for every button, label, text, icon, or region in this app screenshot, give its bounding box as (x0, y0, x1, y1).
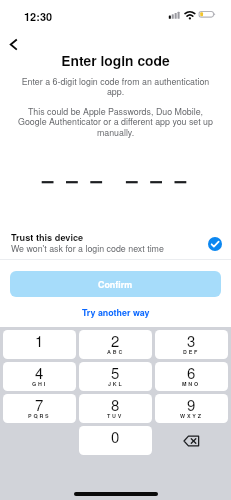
staticText: 12:30 (24, 9, 53, 25)
staticText: 2 (111, 330, 120, 351)
button[interactable]: 4 (3, 362, 76, 391)
button[interactable]: 9 (155, 394, 228, 423)
staticText: 8 (111, 394, 120, 415)
staticText: We won't ask for a login code next time (11, 242, 164, 255)
staticText: 5 (111, 362, 120, 383)
button[interactable]: 5 (79, 362, 152, 391)
staticText: DEF (183, 348, 200, 356)
button[interactable]: 1 (3, 330, 76, 359)
button[interactable]: 0 (79, 426, 152, 455)
staticText: 0 (111, 426, 120, 447)
button[interactable]: 7 (3, 394, 76, 423)
staticText: JKL (108, 380, 124, 388)
staticText: 6 (187, 362, 196, 383)
button[interactable]: Trust this device (0, 222, 231, 259)
staticText: Enter a 6-digit login code from an authe… (17, 75, 214, 98)
button[interactable]: Confirm (10, 271, 221, 297)
button[interactable]: 8 (79, 394, 152, 423)
button[interactable]: 3 (155, 330, 228, 359)
staticText: 3 (187, 330, 196, 351)
button[interactable]: Try another way (0, 303, 231, 321)
staticText: Enter login code (0, 50, 231, 70)
staticText: ABC (107, 348, 125, 356)
button[interactable]: Delete (155, 426, 228, 455)
staticText: 4 (35, 362, 44, 383)
staticText: 9 (187, 394, 196, 415)
button[interactable]: 6 (155, 362, 228, 391)
staticText: GHI (32, 380, 47, 388)
staticText: MNO (182, 380, 201, 388)
staticText: Confirm (98, 278, 133, 291)
staticText: PQRS (28, 412, 51, 420)
staticText: 1 (35, 330, 44, 351)
staticText: Trust this device (11, 231, 84, 244)
staticText: Try another way (82, 306, 150, 319)
staticText: WXYZ (180, 412, 203, 420)
button[interactable]: Back (1, 33, 23, 56)
staticText: TUV (107, 412, 124, 420)
button[interactable]: 2 (79, 330, 152, 359)
staticText: This could be Apple Passwords, Duo Mobil… (17, 105, 214, 139)
staticText: 7 (35, 394, 44, 415)
